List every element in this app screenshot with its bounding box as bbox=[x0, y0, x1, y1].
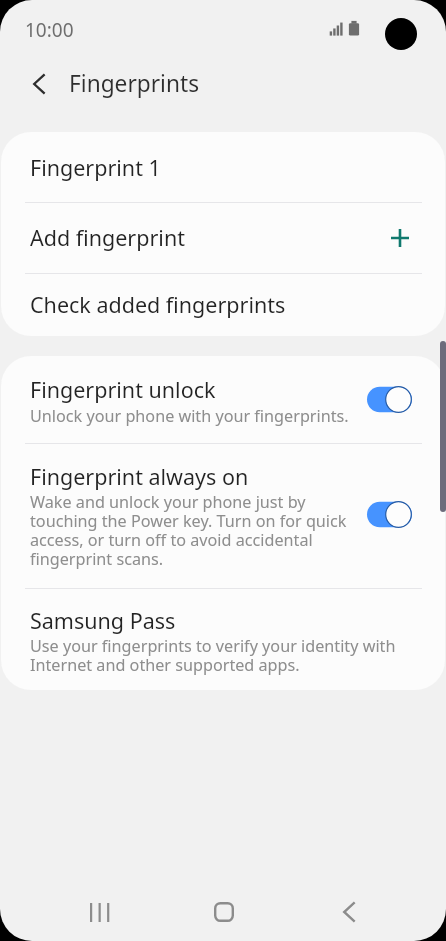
button[interactable]: Fingerprint always on bbox=[1, 444, 445, 588]
button[interactable]: Home bbox=[200, 892, 248, 932]
staticText: 10:00 bbox=[25, 17, 74, 43]
button[interactable]: Back bbox=[325, 892, 373, 932]
button[interactable]: Fingerprint 1 bbox=[1, 132, 445, 202]
staticText: Check added fingerprints bbox=[30, 290, 286, 319]
button[interactable]: Check added fingerprints bbox=[1, 274, 445, 336]
staticText: Fingerprints bbox=[69, 68, 200, 99]
button[interactable]: Recent apps bbox=[75, 892, 123, 932]
staticText: Fingerprint 1 bbox=[30, 153, 161, 182]
button[interactable]: Navigate up bbox=[14, 59, 64, 109]
staticText: Fingerprint always on bbox=[30, 462, 249, 491]
staticText: Fingerprint unlock bbox=[30, 375, 216, 404]
button[interactable]: Add fingerprint bbox=[1, 203, 445, 273]
staticText: Add fingerprint bbox=[30, 223, 185, 252]
button[interactable]: Samsung Pass bbox=[1, 589, 445, 690]
button[interactable]: Fingerprint unlock bbox=[1, 356, 445, 443]
staticText: Wake and unlock your phone just by touch… bbox=[30, 493, 357, 569]
staticText: Use your fingerprints to verify your ide… bbox=[30, 637, 415, 675]
staticText: Unlock your phone with your fingerprints… bbox=[30, 407, 349, 426]
staticText: Samsung Pass bbox=[30, 606, 176, 635]
